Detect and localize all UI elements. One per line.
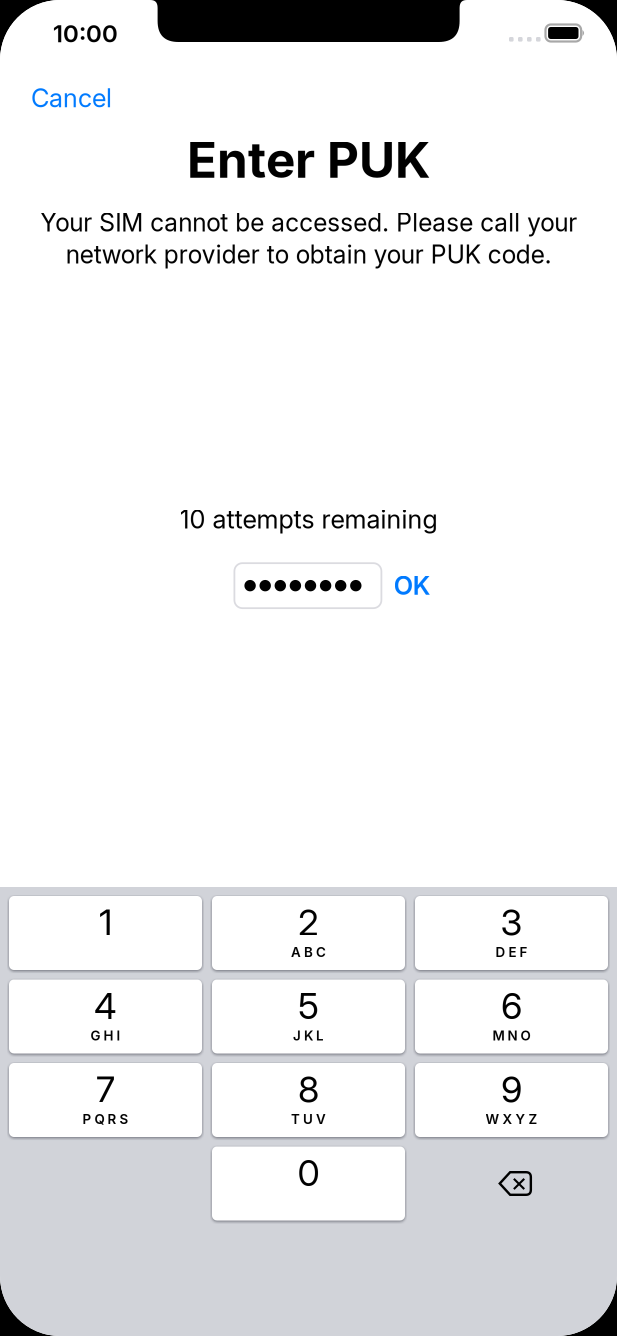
staticText: J K L (293, 1027, 324, 1044)
staticText: D E F (495, 944, 527, 960)
staticText: 2 (298, 900, 319, 944)
staticText: M N O (492, 1027, 530, 1044)
staticText: 5 (298, 984, 319, 1028)
button[interactable]: 9 (415, 1063, 608, 1137)
button[interactable]: 5 (212, 979, 405, 1053)
button[interactable]: 8 (212, 1063, 405, 1137)
staticText: 3 (500, 900, 522, 944)
button[interactable]: 4 (9, 979, 202, 1053)
staticText: 0 (297, 1151, 319, 1195)
button[interactable]: 0 (212, 1146, 405, 1220)
button[interactable]: Delete (415, 1146, 608, 1220)
staticText: 9 (501, 1067, 522, 1111)
staticText: 10 attempts remaining (179, 504, 437, 535)
button[interactable]: 3 (415, 896, 608, 970)
button[interactable]: 2 (212, 896, 405, 970)
button[interactable]: 6 (415, 979, 608, 1053)
staticText: W X Y Z (485, 1111, 537, 1127)
button[interactable]: OK (385, 564, 440, 607)
button[interactable]: 1 (9, 896, 202, 970)
staticText: Your SIM cannot be accessed. Please call… (40, 208, 577, 269)
staticText: P Q R S (82, 1111, 128, 1127)
staticText: 10:00 (53, 19, 118, 48)
staticText: 4 (94, 984, 117, 1028)
staticText: 7 (96, 1067, 115, 1111)
staticText: 6 (501, 984, 522, 1028)
staticText: A B C (291, 944, 326, 960)
staticText: OK (394, 570, 431, 601)
staticText: 1 (99, 900, 112, 944)
button[interactable]: Cancel (0, 59, 126, 122)
button[interactable]: 7 (9, 1063, 202, 1137)
staticText: T U V (291, 1111, 326, 1127)
staticText: Cancel (31, 83, 112, 113)
staticText: G H I (90, 1027, 120, 1044)
staticText: Enter PUK (187, 130, 430, 190)
staticText: 8 (298, 1067, 319, 1111)
